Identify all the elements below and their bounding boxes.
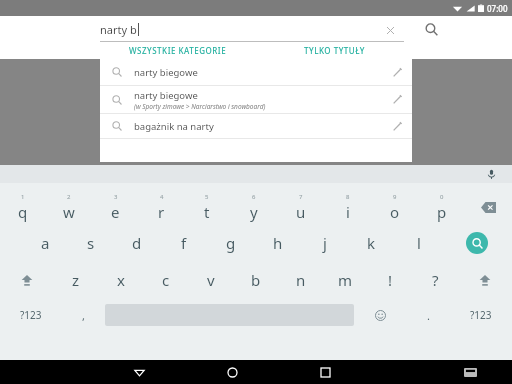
staticText: t [204,202,210,222]
staticText: WSZYSTKIE KATEGORIE [129,45,227,56]
staticText: f [181,233,187,253]
staticText: a [41,233,50,253]
button[interactable]: Back [93,360,186,384]
button[interactable]: 9 [371,189,418,225]
button[interactable]: Recent apps [279,360,372,384]
staticText: , [82,308,85,323]
button[interactable]: Edit [382,86,412,113]
button[interactable]: narty biegowe [100,59,412,85]
button[interactable]: s [68,226,114,260]
staticText: w [63,202,75,222]
staticText: narty biegowe [134,89,198,102]
button[interactable]: v [188,263,233,297]
button[interactable]: TYLKO TYTUŁY [256,42,412,59]
staticText: d [132,233,142,253]
staticText: . [427,308,430,323]
staticText: 2 [67,193,71,201]
button[interactable]: h [254,226,301,260]
button[interactable]: , [62,300,105,330]
button[interactable]: l [395,226,442,260]
button[interactable]: j [301,226,348,260]
staticText: v [207,270,215,290]
button[interactable]: a [22,226,68,260]
button[interactable]: 2 [46,189,92,225]
button[interactable]: Emoji [354,300,407,330]
staticText: k [367,233,376,253]
button[interactable]: ?123 [450,300,512,330]
staticText: j [323,233,327,253]
staticText: q [18,202,28,222]
staticText: ! [388,270,393,290]
staticText: 3 [114,193,118,201]
staticText: narty biegowe [134,66,198,79]
staticText: ?123 [20,308,42,322]
staticText: 07:00 [487,3,508,14]
button[interactable]: WSZYSTKIE KATEGORIE [100,42,256,59]
staticText: x [117,270,125,290]
button[interactable]: 1 [0,189,46,225]
staticText: n [296,270,306,290]
button[interactable]: b [233,263,278,297]
staticText: z [72,270,80,290]
button[interactable]: ? [413,263,458,297]
staticText: s [87,233,95,253]
staticText: h [273,233,283,253]
button[interactable]: z [53,263,98,297]
button[interactable]: x [98,263,143,297]
button[interactable]: 8 [324,189,371,225]
staticText: 5 [205,193,209,201]
staticText: p [437,202,447,222]
button[interactable]: 5 [184,189,230,225]
staticText: b [251,270,261,290]
button[interactable]: 4 [138,189,184,225]
staticText: e [111,202,120,222]
staticText: 6 [252,193,256,201]
staticText: bagażnik na narty [134,120,214,133]
button[interactable]: ! [368,263,413,297]
button[interactable]: c [143,263,188,297]
button[interactable]: Edit [382,114,412,138]
staticText: u [296,202,306,222]
button[interactable]: 7 [277,189,324,225]
staticText: ? [432,270,439,290]
button[interactable]: Voice input [482,165,500,183]
button[interactable]: . [407,300,450,330]
staticText: 0 [440,193,444,201]
staticText: y [250,202,258,222]
button[interactable]: narty biegowe [100,86,412,113]
staticText: 9 [393,193,397,201]
button[interactable]: d [114,226,160,260]
button[interactable]: k [348,226,395,260]
button[interactable]: Edit [382,59,412,85]
staticText: l [417,233,421,253]
button[interactable]: g [207,226,254,260]
staticText: g [226,233,236,253]
staticText: ?123 [470,308,492,322]
staticText: narty b [100,22,137,37]
staticText: r [158,202,165,222]
staticText: TYLKO TYTUŁY [304,45,365,56]
button[interactable]: Clear [380,20,400,40]
button[interactable]: Shift [0,263,53,297]
button[interactable]: Space [105,300,354,330]
staticText: c [162,270,170,290]
button[interactable]: 6 [230,189,277,225]
staticText: m [338,270,353,290]
button[interactable]: Search [442,226,512,260]
button[interactable]: m [323,263,368,297]
button[interactable]: Backspace [465,189,512,225]
button[interactable]: 0 [418,189,465,225]
button[interactable]: Shift [458,263,512,297]
staticText: (w Sporty zimowe > Narciarstwo i snowboa… [134,102,266,111]
button[interactable]: ?123 [0,300,62,330]
button[interactable]: Hide keyboard [428,360,512,384]
staticText: 1 [21,193,25,201]
button[interactable]: 3 [92,189,138,225]
button[interactable]: bagażnik na narty [100,114,412,138]
button[interactable]: f [160,226,207,260]
staticText: i [346,202,350,222]
button[interactable]: Home [186,360,279,384]
button[interactable]: n [278,263,323,297]
staticText: 4 [160,193,164,201]
button[interactable]: Search [412,16,450,42]
